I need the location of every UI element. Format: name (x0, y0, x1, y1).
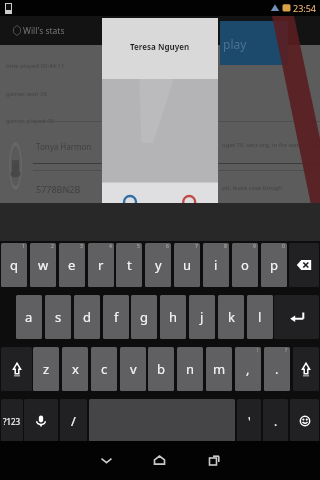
staticText: 6 (166, 243, 169, 250)
button[interactable]: r (88, 243, 114, 287)
staticText: b (157, 360, 165, 378)
staticText: 23:54 (293, 2, 317, 14)
button[interactable]: j (189, 295, 215, 339)
staticText: play (223, 36, 247, 52)
button[interactable]: , (235, 347, 261, 391)
staticText: . (275, 360, 279, 378)
staticText: ?123 (3, 416, 21, 427)
button[interactable]: / (60, 399, 87, 443)
button[interactable]: Recents (192, 441, 236, 480)
staticText: e (68, 256, 76, 274)
button[interactable]: u (174, 243, 200, 287)
button[interactable]: Shift (293, 347, 319, 391)
staticText: 5 (137, 243, 140, 250)
staticText: n (186, 360, 195, 378)
button[interactable]: i (203, 243, 229, 287)
staticText: 9 (253, 243, 256, 250)
button[interactable]: n (177, 347, 203, 391)
staticText: Tonya Harmon (36, 141, 92, 152)
staticText: 5778BN2B (36, 183, 81, 195)
button[interactable]: Will's stats (0, 16, 320, 45)
button[interactable]: v (120, 347, 146, 391)
staticText: 0 (282, 243, 285, 250)
button[interactable]: g (131, 295, 157, 339)
staticText: ? (285, 347, 288, 354)
staticText: i (214, 256, 218, 274)
staticText: 7 (195, 243, 198, 250)
button[interactable]: . (263, 399, 288, 443)
staticText: ! (257, 347, 259, 354)
staticText: j (200, 308, 204, 326)
staticText: v (130, 360, 137, 378)
staticText: Teresa Nguyen (130, 41, 190, 52)
staticText: q (10, 256, 18, 274)
staticText: k (228, 308, 235, 326)
button[interactable]: Back (84, 441, 128, 480)
button[interactable]: a (16, 295, 42, 339)
button[interactable]: y (145, 243, 171, 287)
button[interactable]: e (59, 243, 85, 287)
staticText: s (55, 308, 62, 326)
staticText: 1 (22, 243, 25, 250)
button[interactable]: d (74, 295, 100, 339)
staticText: 3 (80, 243, 83, 250)
staticText: f (114, 308, 119, 326)
button[interactable]: w (30, 243, 56, 287)
staticText: z (43, 360, 50, 378)
staticText: pit, lease case throgh (222, 184, 283, 192)
staticText: . (274, 413, 278, 429)
staticText: u (183, 256, 192, 274)
staticText: 2 (51, 243, 54, 250)
button[interactable]: ' (237, 399, 261, 443)
button[interactable]: t (116, 243, 142, 287)
button[interactable]: p (261, 243, 287, 287)
button[interactable]: c (91, 347, 117, 391)
button[interactable]: q (1, 243, 27, 287)
button[interactable]: s (45, 295, 71, 339)
button[interactable]: Emoji (290, 399, 319, 443)
staticText: games won 38 (6, 90, 47, 98)
staticText: y (155, 256, 162, 274)
staticText: 4 (109, 243, 112, 250)
button[interactable]: Symbols (1, 399, 23, 443)
button[interactable]: h (160, 295, 186, 339)
button[interactable]: Space (89, 399, 235, 443)
button[interactable]: k (218, 295, 244, 339)
staticText: x (72, 360, 79, 378)
button[interactable]: Shift (1, 347, 32, 391)
button[interactable]: x (62, 347, 88, 391)
staticText: h (169, 308, 178, 326)
staticText: m (213, 360, 226, 378)
staticText: games played 43 (6, 117, 54, 125)
staticText: ' (248, 413, 251, 429)
button[interactable]: l (247, 295, 273, 339)
staticText: g (140, 308, 148, 326)
staticText: w (38, 256, 49, 274)
staticText: d (83, 308, 91, 326)
button[interactable]: Home (137, 441, 181, 480)
staticText: / (71, 412, 76, 430)
button[interactable]: b (148, 347, 174, 391)
staticText: a (25, 308, 33, 326)
button[interactable]: Voice input (24, 399, 58, 443)
staticText: Will's stats (23, 25, 65, 37)
staticText: uget TV, sect org. in for wat -at. genes… (222, 141, 320, 149)
button[interactable]: z (33, 347, 59, 391)
staticText: r (98, 256, 104, 274)
button[interactable]: . (264, 347, 290, 391)
staticText: o (241, 256, 249, 274)
button[interactable]: f (103, 295, 129, 339)
button[interactable]: m (206, 347, 232, 391)
staticText: time played 00:44:11 (6, 62, 65, 70)
button[interactable]: o (232, 243, 258, 287)
staticText: c (101, 360, 108, 378)
staticText: 8 (224, 243, 227, 250)
staticText: l (258, 308, 262, 326)
button[interactable]: Enter (274, 295, 319, 339)
button[interactable]: play (220, 21, 288, 65)
staticText: p (270, 256, 278, 274)
button[interactable]: Backspace (289, 243, 319, 287)
staticText: t (127, 256, 132, 274)
staticText: , (246, 360, 250, 378)
